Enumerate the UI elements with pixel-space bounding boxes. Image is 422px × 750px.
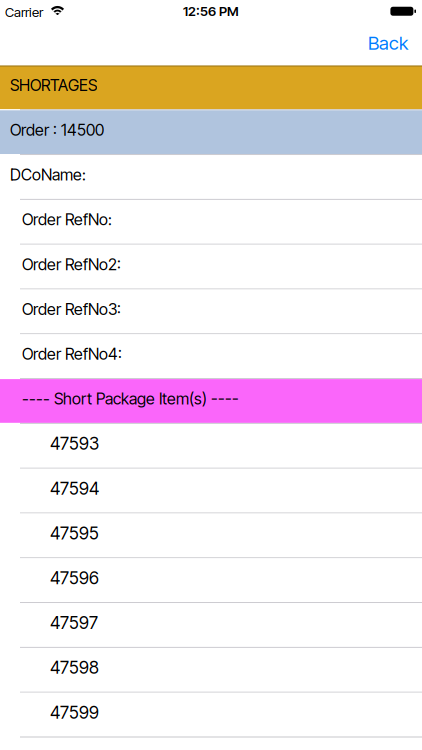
staticText: Order : 14500 — [10, 120, 104, 140]
staticText: 47598 — [50, 657, 99, 678]
button[interactable]: 47596 — [0, 558, 422, 603]
staticText: 47599 — [50, 702, 99, 723]
staticText: 47596 — [50, 567, 99, 588]
button[interactable]: Order : 14500 — [0, 110, 422, 155]
staticText: SHORTAGES — [10, 75, 97, 95]
button[interactable]: 47595 — [0, 513, 422, 558]
staticText: Order RefNo: — [22, 210, 112, 229]
staticText: Order RefNo2: — [22, 255, 121, 274]
staticText: Back — [368, 32, 408, 54]
button[interactable]: Order RefNo2: — [0, 245, 422, 289]
button[interactable]: Order RefNo3: — [0, 289, 422, 334]
button[interactable]: 47593 — [0, 424, 422, 469]
staticText: Order RefNo3: — [22, 299, 121, 319]
staticText: 47594 — [50, 478, 99, 499]
button[interactable]: ---- Short Package Item(s) ---- — [0, 379, 422, 424]
button[interactable]: Back — [368, 32, 422, 56]
staticText: 12:56 PM — [183, 3, 239, 19]
button[interactable]: 47594 — [0, 469, 422, 513]
staticText: 47593 — [50, 433, 99, 454]
staticText: DCoName: — [10, 165, 86, 184]
button[interactable]: 47599 — [0, 693, 422, 737]
button[interactable]: 47598 — [0, 648, 422, 693]
button[interactable]: 47597 — [0, 603, 422, 648]
button[interactable]: DCoName: — [0, 155, 422, 200]
button[interactable]: Order RefNo4: — [0, 334, 422, 379]
staticText: ---- Short Package Item(s) ---- — [22, 389, 239, 408]
staticText: Carrier — [5, 4, 43, 20]
staticText: 47595 — [50, 523, 99, 544]
button[interactable]: Order RefNo: — [0, 200, 422, 245]
button[interactable]: SHORTAGES — [0, 65, 422, 110]
staticText: 47597 — [50, 612, 98, 633]
staticText: Order RefNo4: — [22, 344, 122, 364]
